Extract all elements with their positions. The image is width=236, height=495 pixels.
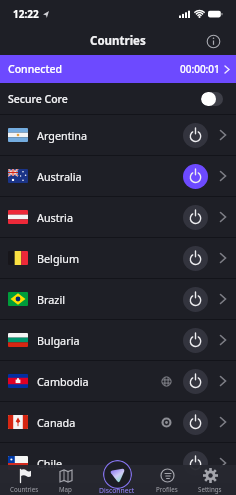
button[interactable]: Austria bbox=[0, 197, 236, 237]
staticText: Argentina bbox=[37, 128, 88, 143]
button[interactable]: Argentina bbox=[0, 115, 236, 155]
button[interactable]: Australia bbox=[0, 156, 236, 196]
staticText: Countries bbox=[10, 485, 39, 493]
button[interactable]: Belgium bbox=[0, 238, 236, 278]
button[interactable]: Cambodia bbox=[0, 361, 236, 401]
staticText: 00:00:01 bbox=[180, 62, 220, 76]
button[interactable]: Secure Core bbox=[0, 83, 236, 114]
button[interactable] bbox=[183, 369, 208, 394]
button[interactable] bbox=[183, 451, 208, 476]
staticText: Settings bbox=[198, 485, 222, 493]
button[interactable] bbox=[183, 123, 208, 148]
button[interactable] bbox=[183, 164, 208, 189]
button[interactable] bbox=[183, 328, 208, 353]
staticText: Australia bbox=[37, 169, 82, 184]
button[interactable] bbox=[103, 460, 132, 489]
button[interactable]: Disconnect bbox=[95, 465, 139, 495]
button[interactable] bbox=[183, 410, 208, 435]
staticText: Countries bbox=[90, 33, 146, 49]
button[interactable]: Canada bbox=[0, 402, 236, 442]
button[interactable]: Bulgaria bbox=[0, 320, 236, 360]
staticText: Belgium bbox=[37, 251, 80, 266]
staticText: Connected bbox=[8, 62, 62, 76]
button[interactable]: Map bbox=[43, 465, 87, 495]
button[interactable] bbox=[183, 287, 208, 312]
staticText: Canada bbox=[37, 415, 76, 430]
button[interactable]: Profiles bbox=[145, 465, 189, 495]
button[interactable] bbox=[183, 246, 208, 271]
button[interactable]: Countries bbox=[2, 465, 46, 495]
staticText: Austria bbox=[37, 210, 73, 225]
staticText: Disconnect bbox=[99, 486, 135, 495]
button[interactable]: Connected bbox=[0, 55, 236, 83]
button[interactable] bbox=[183, 205, 208, 230]
staticText: Map bbox=[59, 485, 72, 493]
staticText: Brazil bbox=[37, 292, 65, 307]
staticText: 12:22 bbox=[13, 7, 39, 21]
button[interactable] bbox=[206, 34, 221, 49]
staticText: Chile bbox=[37, 456, 63, 471]
staticText: Profiles bbox=[156, 485, 178, 493]
staticText: Bulgaria bbox=[37, 333, 80, 348]
staticText: Cambodia bbox=[37, 374, 89, 389]
button[interactable]: Brazil bbox=[0, 279, 236, 319]
button[interactable] bbox=[201, 92, 223, 106]
button[interactable]: Chile bbox=[0, 443, 236, 483]
staticText: Secure Core bbox=[8, 92, 68, 106]
button[interactable]: Settings bbox=[188, 465, 232, 495]
